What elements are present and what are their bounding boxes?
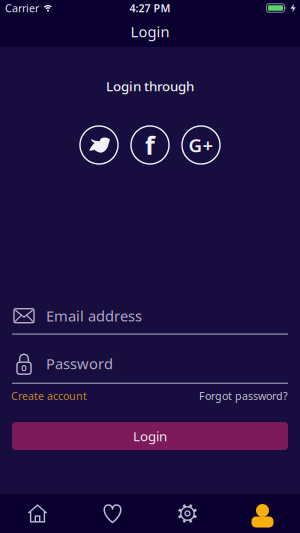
button[interactable]: [150, 494, 225, 533]
button[interactable]: [0, 494, 75, 533]
staticText: G+: [188, 133, 213, 157]
button[interactable]: [225, 494, 300, 533]
staticText: Create account: [11, 389, 87, 403]
button[interactable]: Login: [0, 422, 300, 450]
button[interactable]: f: [131, 126, 169, 164]
button[interactable]: G+: [182, 126, 220, 164]
staticText: Login: [130, 22, 169, 41]
button[interactable]: [75, 494, 150, 533]
staticText: 4:27 PM: [129, 1, 170, 15]
button[interactable]: Password: [0, 353, 300, 384]
staticText: Password: [46, 354, 113, 373]
button[interactable]: Email address: [0, 306, 300, 335]
staticText: Forgot password?: [199, 389, 288, 403]
staticText: Carrier: [5, 1, 39, 15]
staticText: Login through: [106, 77, 194, 95]
button[interactable]: Create account: [11, 389, 87, 403]
staticText: f: [145, 128, 155, 162]
button[interactable]: Forgot password?: [199, 389, 288, 403]
button[interactable]: [80, 126, 118, 164]
staticText: Login: [133, 427, 167, 445]
staticText: Email address: [46, 306, 142, 325]
